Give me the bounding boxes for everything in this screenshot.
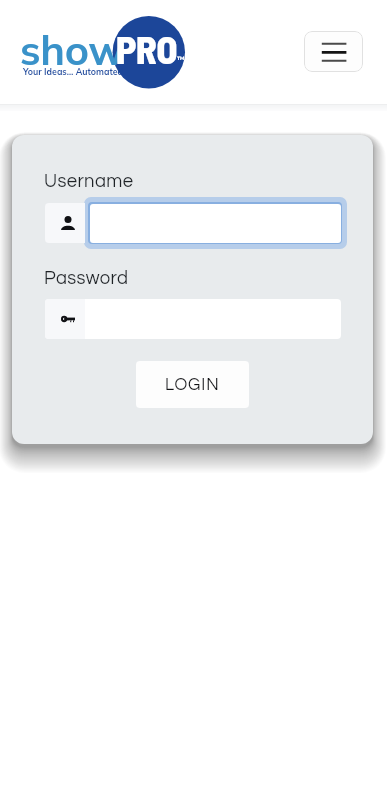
staticText: Password bbox=[44, 269, 129, 288]
staticText: PRO bbox=[116, 26, 177, 72]
button[interactable]: Password input bbox=[45, 299, 341, 339]
button[interactable]: Open navigation menu bbox=[304, 31, 363, 72]
staticText: LOGIN bbox=[165, 376, 220, 394]
staticText: show bbox=[20, 24, 125, 75]
staticText: Username bbox=[44, 172, 134, 191]
staticText: Your Ideas… Automated. bbox=[23, 66, 126, 77]
staticText: ™ bbox=[177, 54, 185, 64]
button[interactable]: LOGIN bbox=[136, 361, 249, 408]
